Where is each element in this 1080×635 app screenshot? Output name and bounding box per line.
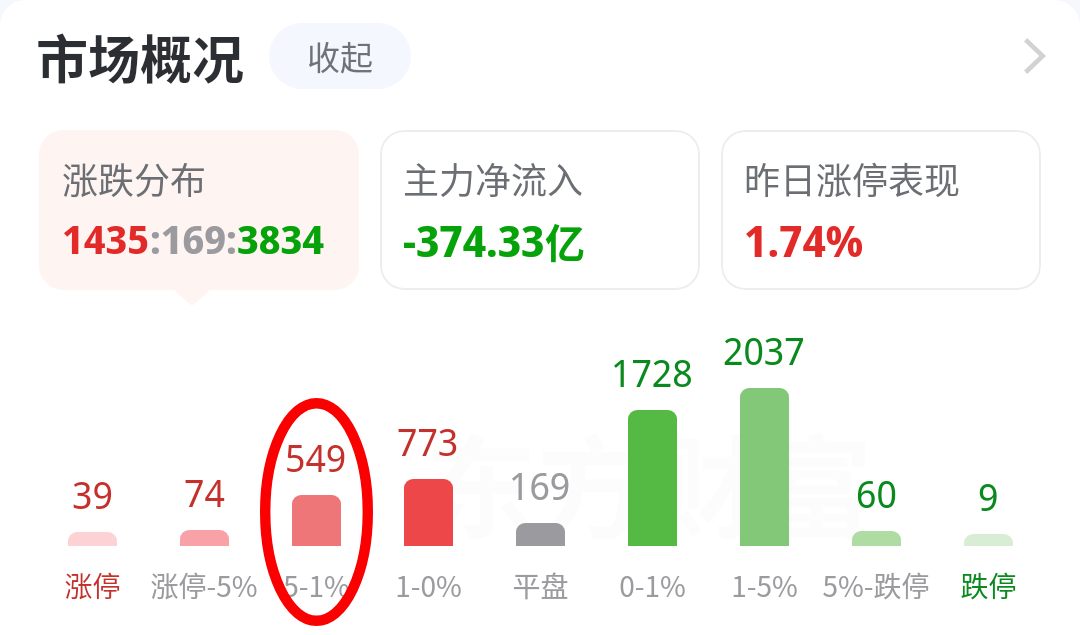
staticText: 昨日涨停表现 [744,152,961,204]
staticText: 涨跌分布 [62,152,207,204]
staticText: 9 [978,470,999,522]
button[interactable]: 市场概况 [0,19,245,94]
staticText: :169: [150,211,237,265]
button[interactable]: 昨日涨停表现 [721,130,1041,290]
staticText: 5%-跌停 [822,565,930,606]
button[interactable]: 涨跌分布 [39,130,359,290]
staticText: 60 [856,467,897,519]
button[interactable]: 9 [932,316,1044,606]
button[interactable]: 1728 [596,316,708,606]
staticText: 亿 [545,212,585,270]
staticText: 收起 [307,32,373,80]
button[interactable]: More [990,11,1080,101]
staticText: 74 [184,466,225,518]
staticText: 2037 [723,324,805,376]
staticText: 1435 [62,211,150,265]
staticText: 跌停 [960,565,1017,606]
button[interactable]: 549 [260,316,372,606]
button[interactable]: 773 [372,316,484,606]
staticText: 0-1% [619,565,686,606]
staticText: 1.74% [744,211,864,270]
staticText: 涨停 [64,565,121,606]
staticText: 169 [509,459,571,511]
staticText: 平盘 [512,565,569,606]
button[interactable]: 2037 [708,316,820,606]
staticText: 549 [285,431,347,483]
staticText: 市场概况 [36,19,245,94]
staticText: 涨停-5% [150,565,258,606]
staticText: 主力净流入 [403,152,584,204]
button[interactable]: 74 [148,316,260,606]
staticText: 3834 [237,211,325,265]
staticText: 东方财富 [425,400,873,562]
button[interactable]: 39 [36,316,148,606]
staticText: 1728 [611,346,693,398]
staticText: 773 [397,415,459,467]
staticText: 5-1% [283,565,350,606]
staticText: 1-0% [395,565,462,606]
button[interactable]: 收起 [269,23,411,89]
staticText: 1-5% [731,565,798,606]
button[interactable]: 主力净流入 [380,130,700,290]
staticText: 39 [72,468,113,520]
staticText: -374.33 [403,211,545,270]
button[interactable]: 60 [820,316,932,606]
button[interactable]: 169 [484,316,596,606]
